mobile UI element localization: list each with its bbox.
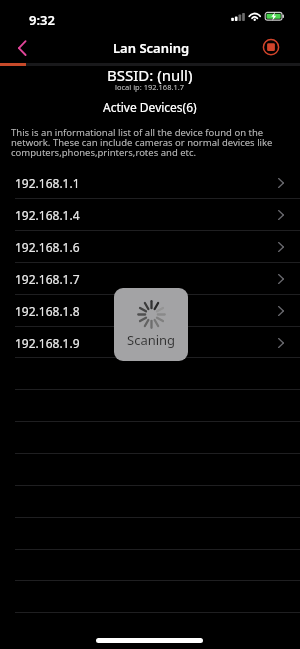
staticText: 192.168.1.6 [15,239,80,255]
staticText: 9:32 [29,11,55,29]
staticText: This is an informational list of all the… [11,126,277,159]
staticText: Lan Scaning [113,39,190,57]
button[interactable]: 192.168.1.1 [0,167,300,199]
staticText: 192.168.1.4 [15,207,80,223]
staticText: Scaning [127,331,176,349]
button[interactable]: 192.168.1.7 [0,263,300,295]
button[interactable]: Stop scanning [258,30,284,64]
button[interactable]: 192.168.1.9 [0,327,300,359]
staticText: local ip: 192.168.1.7 [115,82,185,92]
button[interactable]: Back [6,30,34,64]
staticText: 192.168.1.1 [15,175,80,191]
staticText: BSSID: (null) [107,65,193,85]
button[interactable]: 192.168.1.4 [0,199,300,231]
staticText: 192.168.1.8 [15,303,80,319]
staticText: 192.168.1.7 [15,271,80,287]
staticText: Active Devices(6) [103,99,197,115]
staticText: 192.168.1.9 [15,335,80,351]
button[interactable]: 192.168.1.8 [0,295,300,327]
button[interactable]: 192.168.1.6 [0,231,300,263]
